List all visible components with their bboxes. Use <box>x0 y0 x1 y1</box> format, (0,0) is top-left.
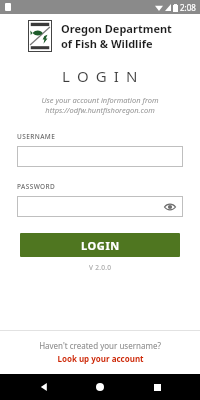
button[interactable]: Haven't created your username? <box>0 340 200 364</box>
button[interactable]: Show password <box>17 196 183 217</box>
staticText: of Fish & Wildlife <box>61 36 153 51</box>
staticText: Use your account information from <box>41 95 159 105</box>
button[interactable]: Home <box>87 374 113 400</box>
staticText: Haven't created your username? <box>39 340 161 351</box>
staticText: PASSWORD <box>17 182 56 191</box>
button[interactable]: Recent apps <box>144 374 170 400</box>
button[interactable] <box>17 146 183 167</box>
button[interactable]: Back <box>31 374 57 400</box>
staticText: Look up your account <box>57 353 144 364</box>
staticText: Oregon Department <box>61 21 172 36</box>
button[interactable]: Show password <box>163 200 177 214</box>
staticText: 2:08 <box>180 2 196 13</box>
staticText: L O G I N <box>62 66 139 86</box>
staticText: V 2.0.0 <box>89 263 112 272</box>
staticText: LOGIN <box>81 238 120 253</box>
staticText: USERNAME <box>17 132 56 141</box>
button[interactable]: LOGIN <box>20 233 180 257</box>
staticText: https://odfw.huntfishoregon.com <box>45 105 155 115</box>
